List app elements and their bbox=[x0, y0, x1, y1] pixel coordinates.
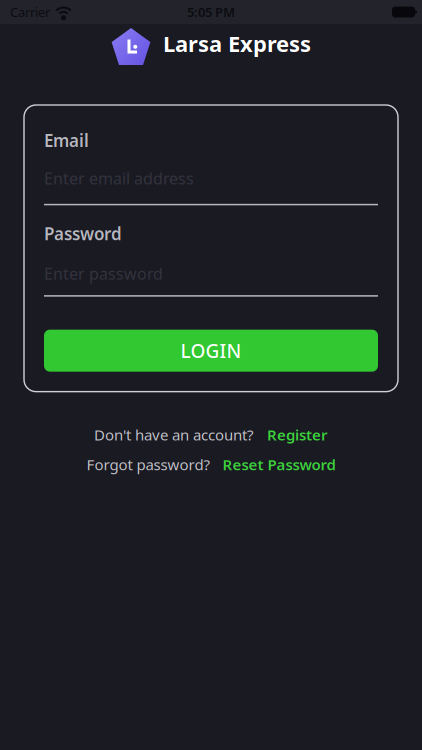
staticText: Reset Password bbox=[222, 455, 335, 474]
staticText: Larsa Express bbox=[163, 29, 311, 58]
staticText: Don't have an account? bbox=[94, 425, 254, 444]
staticText: 5:05 PM bbox=[187, 3, 235, 21]
staticText: Forgot password? bbox=[86, 455, 210, 474]
staticText: Carrier bbox=[10, 3, 50, 21]
staticText: Enter email address bbox=[44, 168, 194, 189]
button[interactable]: Enter password bbox=[44, 263, 378, 297]
button[interactable]: Reset Password bbox=[222, 455, 335, 474]
staticText: Email bbox=[44, 129, 89, 152]
button[interactable]: Enter email address bbox=[44, 168, 378, 205]
button[interactable]: Register bbox=[267, 425, 328, 444]
button[interactable]: LOGIN bbox=[44, 330, 378, 372]
staticText: Enter password bbox=[44, 263, 163, 284]
staticText: Register bbox=[267, 425, 328, 444]
staticText: LOGIN bbox=[180, 338, 241, 363]
staticText: Password bbox=[44, 222, 122, 245]
